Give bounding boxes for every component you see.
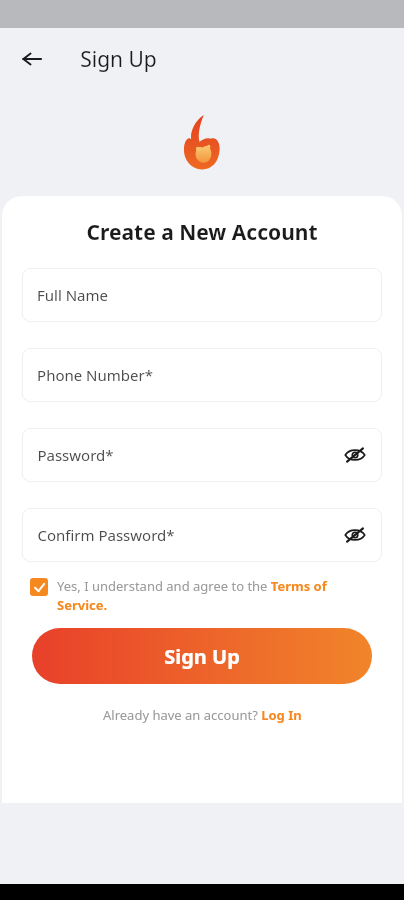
button[interactable]: Agree to Terms of Service <box>30 578 48 596</box>
staticText: Full Name <box>37 285 108 305</box>
button[interactable]: Phone Number* <box>22 348 382 402</box>
button[interactable]: Already have an account? Log In <box>103 706 302 724</box>
button[interactable]: Agree to Terms of Service <box>30 577 374 614</box>
staticText: Phone Number* <box>37 365 153 385</box>
button[interactable]: Toggle password visibility <box>338 518 372 552</box>
button[interactable]: Back <box>12 39 52 79</box>
button[interactable]: Password* <box>22 428 382 482</box>
button[interactable]: Confirm Password* <box>22 508 382 562</box>
staticText: Already have an account? Log In <box>103 706 302 724</box>
other: App logo <box>181 114 223 170</box>
staticText: Yes, I understand and agree to the Terms… <box>57 577 374 614</box>
staticText: Sign Up <box>80 45 157 74</box>
staticText: Create a New Account <box>86 218 318 247</box>
staticText: Sign Up <box>164 643 240 670</box>
button[interactable]: Full Name <box>22 268 382 322</box>
button[interactable]: Sign Up <box>32 628 372 684</box>
staticText: Confirm Password* <box>37 525 175 545</box>
staticText: Password* <box>37 445 114 465</box>
button[interactable]: Toggle password visibility <box>338 438 372 472</box>
